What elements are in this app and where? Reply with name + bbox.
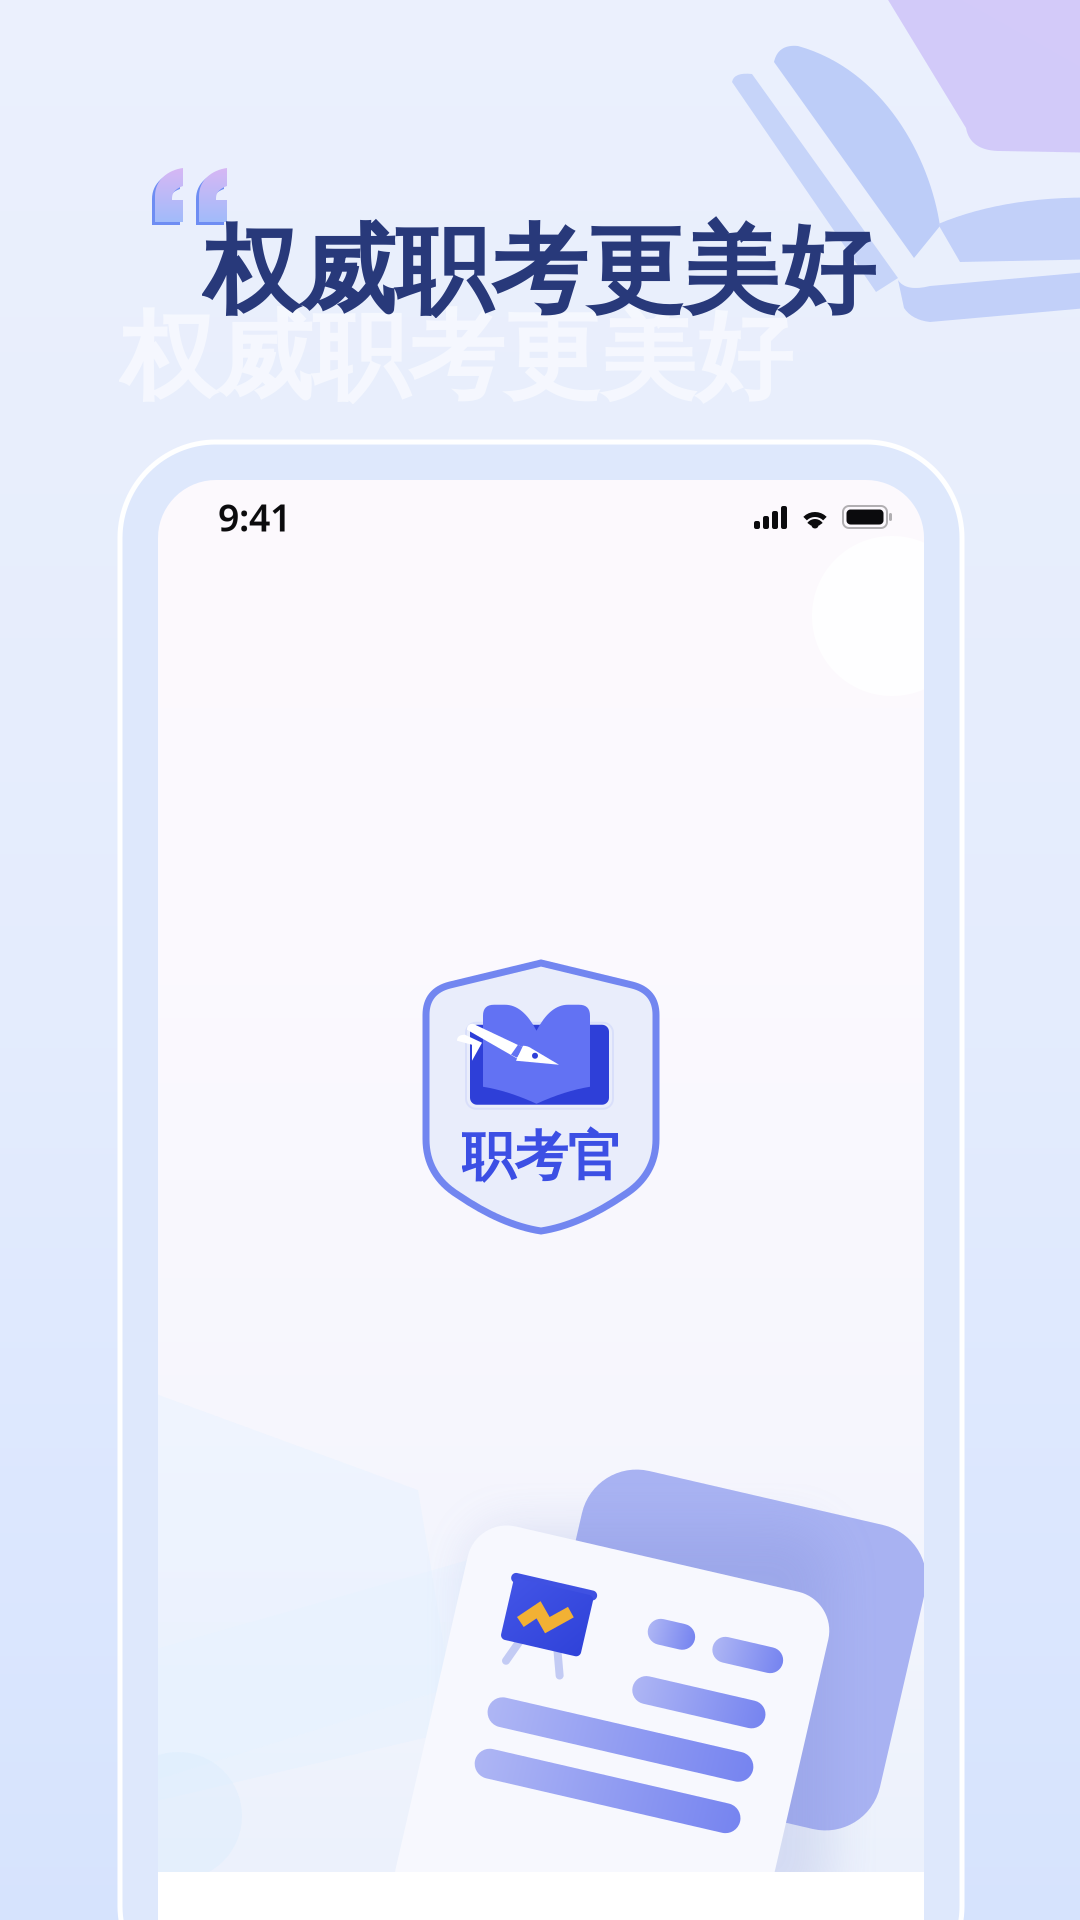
staticText: 权威职考更美好 xyxy=(120,298,792,416)
staticText: 权威职考更美好 xyxy=(203,212,875,330)
staticText: 职考官 xyxy=(461,1124,620,1189)
staticText: 9:41 xyxy=(218,492,291,542)
